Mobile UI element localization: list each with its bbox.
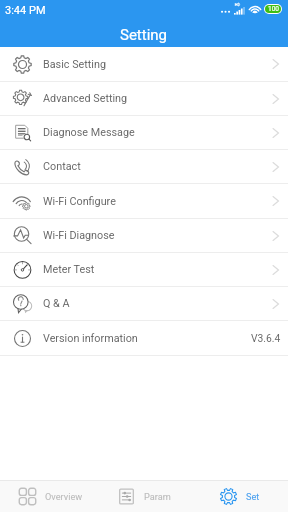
staticText: Diagnose Message [43, 126, 135, 139]
button[interactable]: Version information [0, 321, 288, 356]
staticText: 100 [268, 5, 279, 12]
button[interactable]: Contact [0, 150, 288, 184]
other: Wi-Fi Configure [13, 192, 32, 211]
button[interactable]: Wi-Fi Diagnose [0, 219, 288, 253]
other: Q & A [13, 294, 32, 313]
button[interactable]: Basic Setting [0, 47, 288, 82]
other: Advanced Setting [13, 89, 32, 108]
staticText: Wi-Fi Configure [43, 195, 116, 208]
staticText: Advanced Setting [43, 92, 128, 105]
staticText: Meter Test [43, 263, 95, 276]
staticText: Basic Setting [43, 58, 106, 71]
other: Param [118, 488, 135, 505]
other: Meter Test [13, 260, 32, 279]
staticText: 3:44 PM [5, 4, 46, 17]
staticText: Set [246, 491, 260, 502]
button[interactable]: Meter Test [0, 253, 288, 287]
other: Overview [19, 488, 36, 505]
staticText: Overview [45, 491, 83, 502]
staticText: Setting [120, 26, 168, 44]
other: Contact [13, 157, 32, 176]
button[interactable]: Set [192, 481, 288, 512]
staticText: Version information [43, 332, 138, 345]
other: Diagnose Message [13, 123, 32, 142]
button[interactable]: Q & A [0, 287, 288, 321]
staticText: Contact [43, 160, 81, 173]
button[interactable]: Advanced Setting [0, 82, 288, 116]
button[interactable]: Diagnose Message [0, 116, 288, 150]
other: Set [220, 488, 237, 505]
other: Wi-Fi Diagnose [13, 226, 32, 245]
other: Version information [13, 329, 32, 348]
staticText: Q & A [43, 297, 70, 310]
staticText: Param [144, 491, 171, 502]
button[interactable]: Overview [0, 481, 96, 512]
staticText: Wi-Fi Diagnose [43, 229, 115, 242]
staticText: V3.6.4 [251, 332, 281, 344]
button[interactable]: Wi-Fi Configure [0, 184, 288, 219]
button[interactable]: Param [96, 481, 192, 512]
other: Basic Setting [13, 55, 32, 74]
